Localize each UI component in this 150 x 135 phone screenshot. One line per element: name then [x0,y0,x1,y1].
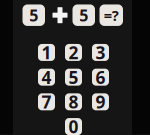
staticText: 4 [41,66,51,89]
button[interactable]: 9 [92,93,109,110]
button[interactable]: =? [99,4,123,26]
button[interactable]: 1 [38,44,55,61]
button[interactable]: 7 [38,93,55,110]
button[interactable]: 5 [22,4,45,26]
staticText: 5 [68,66,78,89]
staticText: =? [104,5,119,25]
button[interactable]: 3 [92,44,109,61]
button[interactable]: 8 [65,93,82,110]
staticText: 9 [95,90,105,113]
staticText: 2 [68,41,78,64]
staticText: 5 [79,5,88,26]
button[interactable]: 5 [72,4,95,26]
staticText: 3 [95,41,105,64]
staticText: 1 [41,41,51,64]
button[interactable]: 0 [65,118,82,135]
staticText: 7 [41,90,51,113]
staticText: 0 [68,115,78,135]
button[interactable]: 5 [65,69,82,86]
staticText: 8 [68,90,78,113]
staticText: 6 [95,66,105,89]
staticText: 5 [29,5,38,26]
button[interactable]: 2 [65,44,82,61]
button[interactable]: 6 [92,69,109,86]
button[interactable]: 4 [38,69,55,86]
button[interactable]: Add [52,5,68,26]
